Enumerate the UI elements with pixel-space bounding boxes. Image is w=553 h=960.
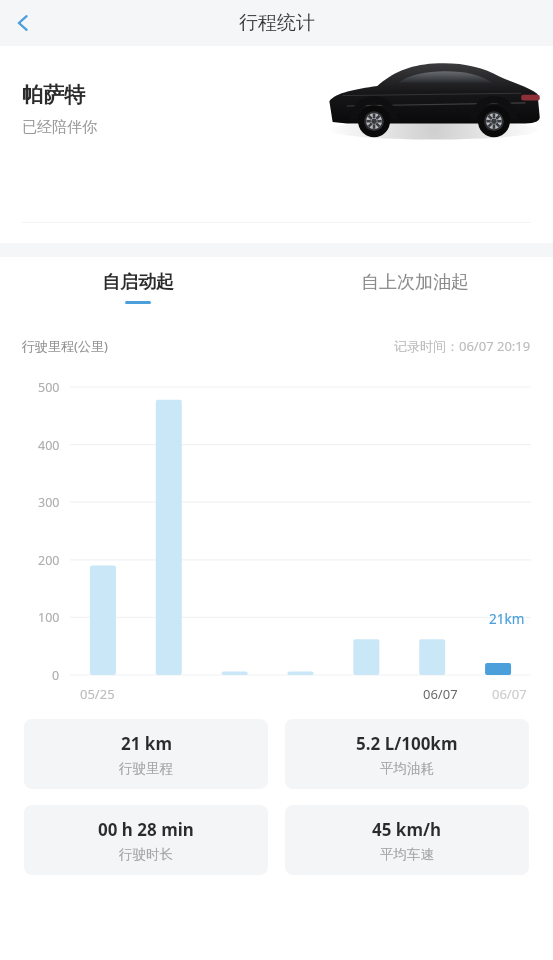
staticText: 记录时间：06/07 20:19 [394, 337, 531, 355]
staticText: 公里 [376, 259, 403, 276]
staticText: 500 [38, 379, 60, 396]
staticText: 已经陪伴你 [22, 118, 97, 137]
staticText: 21km [489, 610, 525, 628]
staticText: 300 [38, 494, 60, 511]
staticText: 平均油耗 [380, 760, 434, 777]
staticText: 400 [38, 437, 60, 454]
button[interactable]: 5.2 L/100km [285, 719, 529, 789]
staticText: 21 km [121, 732, 172, 755]
staticText: 06/07 [423, 685, 458, 703]
staticText: 平均车速 [380, 846, 434, 863]
staticText: 5.2 L/100km [356, 732, 458, 755]
staticText: 0 [52, 667, 60, 684]
button[interactable]: 45 km/h [285, 805, 529, 875]
staticText: 586 [22, 242, 69, 279]
staticText: 自启动起 [102, 271, 174, 294]
staticText: 行驶里程 [119, 760, 173, 777]
staticText: 行驶时长 [119, 846, 173, 863]
staticText: 100 [38, 609, 60, 626]
staticText: （自绑车起） [88, 259, 169, 276]
button[interactable]: 00 h 28 min [24, 805, 268, 875]
button[interactable]: 21 km [24, 719, 268, 789]
staticText: 45 km/h [372, 818, 442, 841]
staticText: 21588 [293, 242, 371, 279]
button[interactable]: Back [0, 0, 46, 46]
staticText: 行驶里程(公里) [22, 337, 108, 355]
staticText: 自上次加油起 [361, 271, 469, 294]
staticText: 00 h 28 min [98, 818, 194, 841]
staticText: （总里程） [403, 259, 471, 276]
staticText: 行程统计 [239, 11, 315, 35]
staticText: 帕萨特 [22, 82, 85, 108]
staticText: 06/07 [492, 685, 527, 703]
button[interactable]: 自启动起 [0, 257, 276, 317]
staticText: 200 [38, 552, 60, 569]
staticText: 05/25 [80, 685, 115, 703]
button[interactable]: 自上次加油起 [276, 257, 553, 317]
